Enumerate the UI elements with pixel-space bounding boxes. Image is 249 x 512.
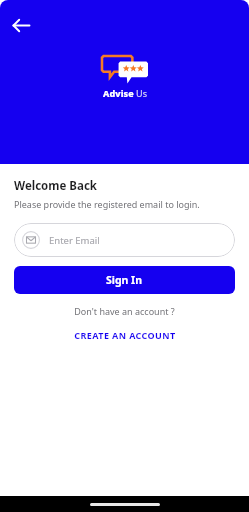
staticText: Enter Email [49,234,100,247]
staticText: Advise [103,87,134,99]
staticText: CREATE AN ACCOUNT [74,329,176,341]
staticText: Please provide the registered email to l… [14,198,200,210]
staticText: Welcome Back [14,178,97,194]
button[interactable]: Back [6,10,36,40]
staticText: Don't have an account ? [14,305,235,317]
staticText: Sign In [106,273,143,287]
staticText: Us [136,87,148,99]
button[interactable]: Enter Email [14,223,235,257]
button[interactable]: Sign In [14,266,235,294]
button[interactable]: CREATE AN ACCOUNT [14,329,235,341]
